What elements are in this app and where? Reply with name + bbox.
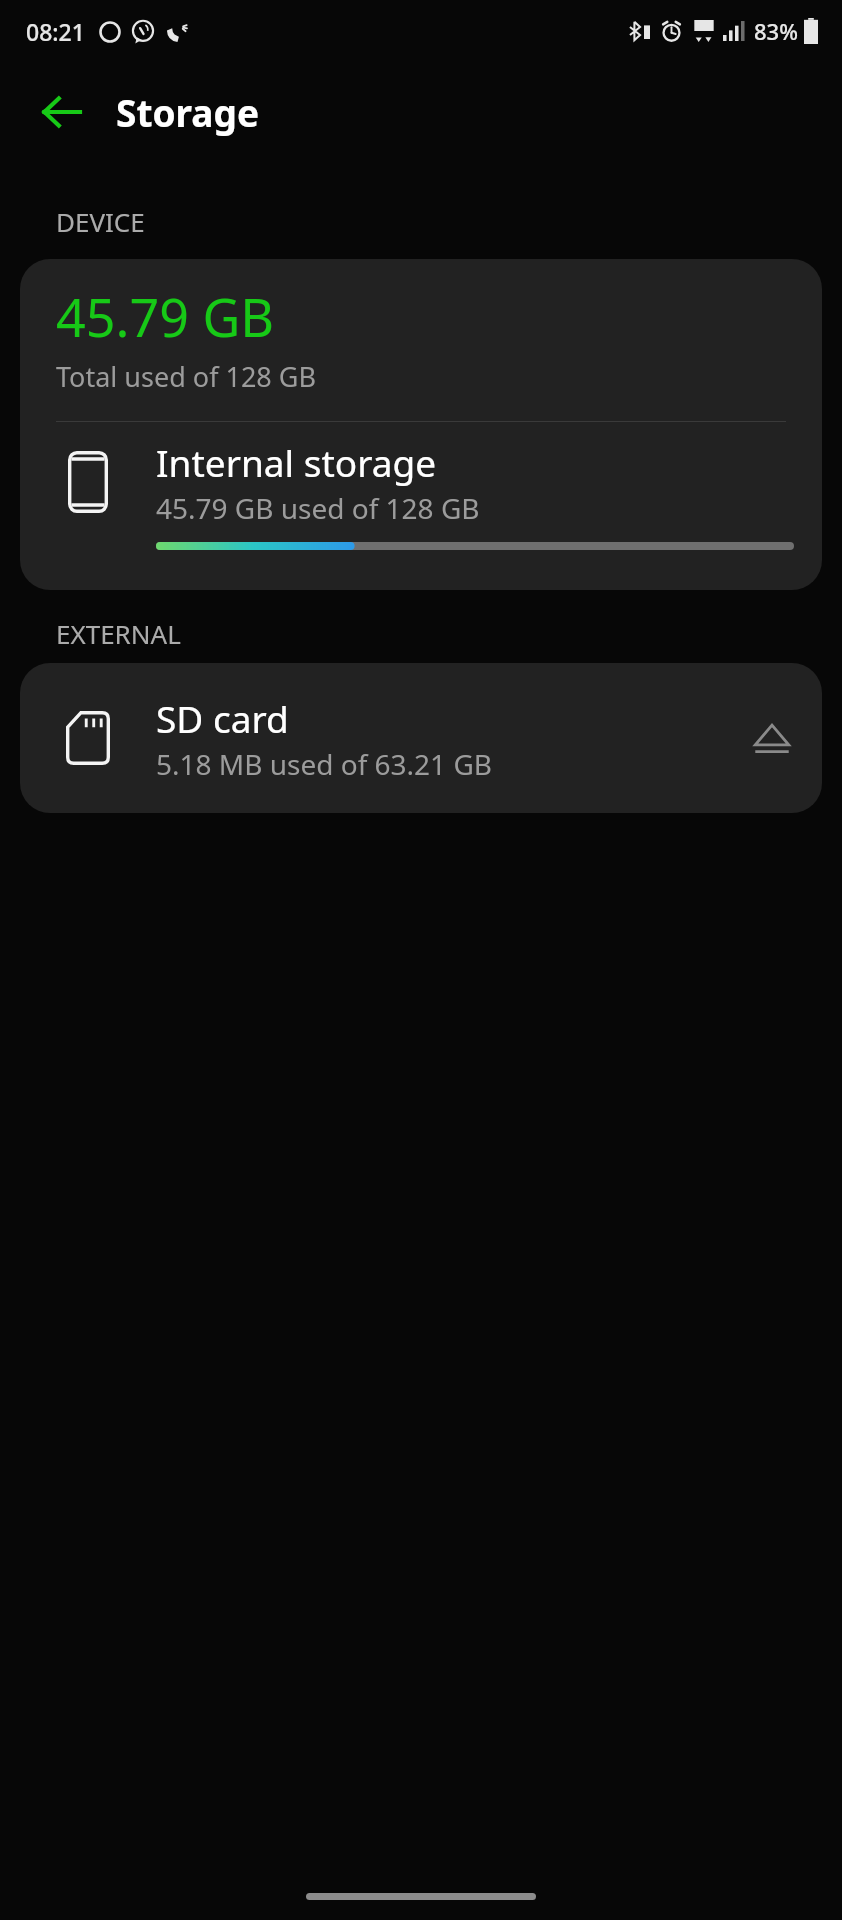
staticText: Total used of 128 GB bbox=[56, 358, 317, 395]
button[interactable]: Eject SD card bbox=[722, 663, 822, 813]
button[interactable]: SD card bbox=[20, 663, 822, 813]
button[interactable]: Internal storage bbox=[20, 422, 822, 542]
staticText: SD card bbox=[156, 693, 289, 743]
staticText: 5.18 MB used of 63.21 GB bbox=[156, 745, 493, 783]
staticText: Storage bbox=[116, 87, 260, 137]
staticText: 45.79 GB bbox=[56, 281, 275, 352]
staticText: EXTERNAL bbox=[56, 616, 181, 651]
staticText: DEVICE bbox=[56, 204, 145, 239]
staticText: 45.79 GB used of 128 GB bbox=[156, 489, 480, 527]
button[interactable]: Back bbox=[30, 80, 94, 144]
staticText: 83% bbox=[754, 16, 798, 46]
staticText: 08:21 bbox=[26, 16, 85, 47]
staticText: Internal storage bbox=[156, 437, 437, 487]
